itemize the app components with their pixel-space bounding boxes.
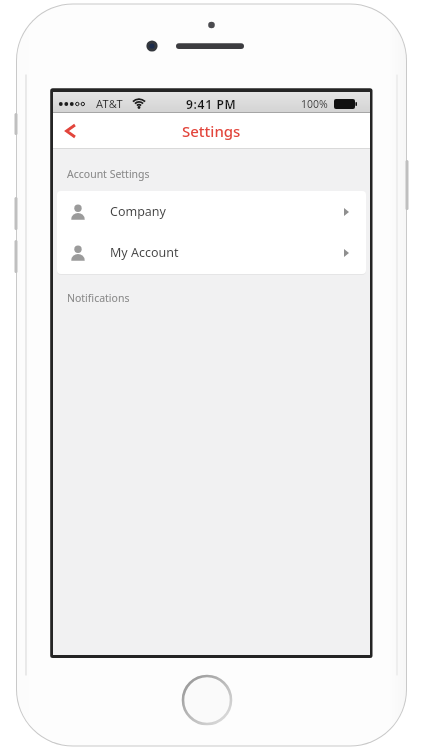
staticText: My Account: [110, 244, 179, 261]
staticText: 9:41 PM: [186, 96, 237, 112]
button[interactable]: Company: [57, 191, 366, 232]
staticText: Company: [110, 203, 166, 220]
staticText: Account Settings: [67, 167, 150, 181]
staticText: Settings: [182, 121, 241, 141]
button[interactable]: My Account: [57, 232, 366, 273]
button[interactable]: [53, 113, 87, 149]
staticText: AT&T: [96, 96, 123, 111]
staticText: Notifications: [67, 291, 130, 305]
staticText: 100%: [301, 97, 328, 111]
